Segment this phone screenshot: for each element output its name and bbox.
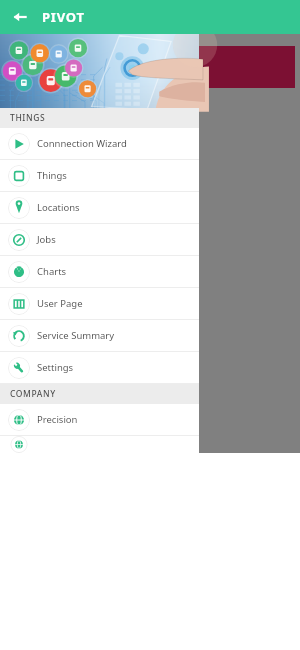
button[interactable]: Precision <box>0 404 199 436</box>
button[interactable]: Things <box>0 160 199 192</box>
staticText: Locations <box>37 201 80 214</box>
button[interactable] <box>199 46 295 88</box>
staticText: Connnection Wizard <box>37 137 127 150</box>
staticText: Service Summary <box>37 329 115 342</box>
staticText: User Page <box>37 297 83 310</box>
staticText: COMPANY <box>10 388 56 400</box>
staticText: PIVOT <box>42 8 85 26</box>
staticText: Jobs <box>37 233 56 246</box>
button[interactable]: Connnection Wizard <box>0 128 199 160</box>
button[interactable]: Service Summary <box>0 320 199 352</box>
button[interactable]: Charts <box>0 256 199 288</box>
staticText: THINGS <box>10 112 46 124</box>
staticText: Things <box>37 169 67 182</box>
button[interactable]: User Page <box>0 288 199 320</box>
staticText: Settings <box>37 361 74 374</box>
staticText: Charts <box>37 265 67 278</box>
button[interactable]: Jobs <box>0 224 199 256</box>
button[interactable]: Back <box>8 5 32 29</box>
button[interactable] <box>0 436 199 453</box>
button[interactable]: Settings <box>0 352 199 384</box>
staticText: Precision <box>37 413 78 426</box>
button[interactable]: Locations <box>0 192 199 224</box>
